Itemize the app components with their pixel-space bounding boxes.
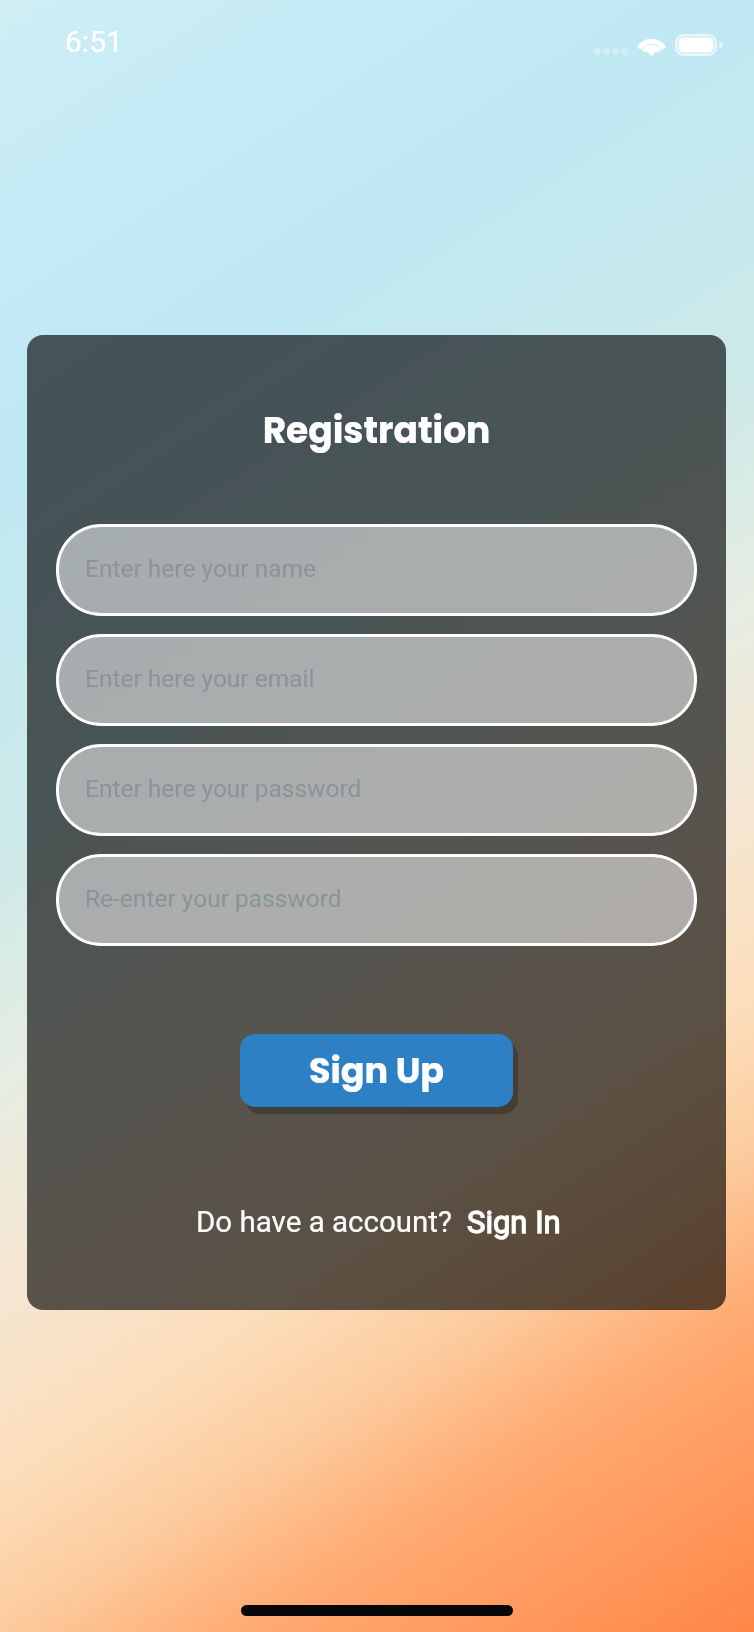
staticText: Re-enter your password (85, 884, 342, 913)
other: Battery full (675, 34, 723, 56)
staticText: Enter here your email (85, 664, 315, 693)
button[interactable]: Enter here your password (56, 744, 697, 836)
button[interactable]: Enter here your name (56, 524, 697, 616)
button[interactable]: Sign Up (240, 1034, 513, 1107)
staticText: Sign In (467, 1204, 561, 1240)
staticText: Enter here your password (85, 774, 362, 803)
button[interactable]: Enter here your email (56, 634, 697, 726)
other: Wi-Fi (636, 33, 667, 56)
button[interactable]: Re-enter your password (56, 854, 697, 946)
other: Cellular signal (594, 48, 628, 55)
button[interactable]: Sign In (467, 1204, 561, 1240)
staticText: Registration (27, 405, 726, 455)
staticText: Sign Up (309, 1046, 445, 1095)
staticText: Do have a account? (196, 1205, 452, 1240)
staticText: 6:51 (65, 24, 123, 59)
staticText: Enter here your name (85, 554, 317, 583)
